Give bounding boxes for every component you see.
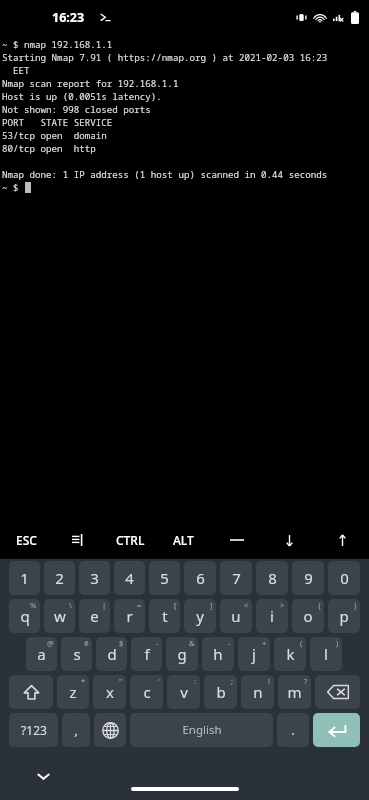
button[interactable]: 7 [220,561,252,595]
button[interactable]: 3 [79,561,110,595]
button[interactable]: o [292,599,324,633]
button[interactable]: Shift [9,675,53,709]
staticText: > [280,600,285,610]
button[interactable]: d [96,637,127,671]
staticText: EET [2,64,30,77]
staticText: 8 [268,568,277,588]
staticText: x [106,682,114,702]
button[interactable]: j [238,637,270,671]
button[interactable]: ESC [0,521,52,559]
button[interactable]: , [62,713,90,747]
button[interactable]: r [114,599,145,633]
button[interactable]: v [167,675,200,709]
button[interactable]: e [79,599,110,633]
staticText: 7 [232,568,241,588]
button[interactable]: Minus [210,521,263,559]
staticText: q [20,606,30,626]
button[interactable]: 2 [44,561,75,595]
staticText: ' [158,676,160,686]
staticText: e [90,606,99,626]
button[interactable]: n [241,675,274,709]
staticText: 4 [125,568,134,588]
staticText: ! [268,676,271,686]
staticText: \ [69,600,72,610]
staticText: CTRL [116,532,145,548]
button[interactable]: b [204,675,237,709]
button[interactable]: 0 [328,561,360,595]
button[interactable]: z [57,675,89,709]
staticText: c [143,682,151,702]
staticText: < [244,600,249,610]
staticText: [ [174,600,177,610]
button[interactable]: Enter [313,713,360,747]
staticText: # [84,638,89,648]
staticText: Nmap done: 1 IP address (1 host up) scan… [2,168,328,181]
staticText: 3 [90,568,99,588]
button[interactable]: u [220,599,252,633]
staticText: PORT STATE SERVICE [2,116,113,129]
button[interactable]: q [9,599,40,633]
button[interactable]: CTRL [104,521,157,559]
staticText: { [318,600,321,610]
button[interactable]: 4 [114,561,145,595]
button[interactable]: m [278,675,311,709]
staticText: i [270,606,274,626]
staticText: Host is up (0.0051s latency). [2,90,162,103]
staticText: * [81,676,86,686]
button[interactable]: Backspace [315,675,360,709]
staticText: - [156,638,159,648]
button[interactable]: w [44,599,75,633]
button[interactable]: Down [263,521,316,559]
staticText: ~ $ nmap 192.168.1.1 [2,38,113,51]
button[interactable]: f [131,637,162,671]
staticText: r [126,606,133,626]
staticText: b [216,682,226,702]
button[interactable]: 8 [256,561,288,595]
button[interactable]: 1 [9,561,40,595]
button[interactable]: 5 [149,561,180,595]
staticText: t [162,606,168,626]
staticText: , [74,721,78,739]
button[interactable]: h [202,637,234,671]
staticText: m [287,682,302,702]
button[interactable]: p [328,599,360,633]
staticText: Nmap scan report for 192.168.1.1 [2,77,179,90]
staticText: d [107,644,117,664]
staticText: 53/tcp open domain [2,129,107,142]
button[interactable]: g [166,637,198,671]
staticText: = [137,600,142,610]
staticText: 0 [340,568,349,588]
button[interactable]: x [93,675,126,709]
button[interactable]: 6 [184,561,216,595]
staticText: p [339,606,349,626]
staticText: + [262,638,267,648]
staticText: 6 [196,568,205,588]
staticText: - [228,638,231,648]
button[interactable]: c [130,675,163,709]
staticText: @ [47,638,54,648]
staticText: Starting Nmap 7.91 ( https://nmap.org ) … [2,51,328,64]
button[interactable]: l [310,637,342,671]
button[interactable]: Hide keyboard [28,761,58,791]
button[interactable]: s [61,637,92,671]
button[interactable]: ALT [157,521,210,559]
staticText: Not shown: 998 closed ports [2,103,151,116]
button[interactable]: Change language [94,713,126,747]
button[interactable]: Tab [52,521,104,559]
button[interactable]: Up [316,521,369,559]
button[interactable]: i [256,599,288,633]
button[interactable]: t [149,599,180,633]
staticText: h [213,644,223,664]
button[interactable]: y [184,599,216,633]
button[interactable]: k [274,637,306,671]
staticText: s [73,644,81,664]
button[interactable]: 9 [292,561,324,595]
staticText: 16:23 [52,9,85,26]
button[interactable]: a [26,637,57,671]
button[interactable]: ?123 [9,713,58,747]
button[interactable]: English [130,713,273,747]
staticText: a [37,644,46,664]
staticText: w [54,606,66,626]
button[interactable]: . [277,713,309,747]
staticText: : [194,676,197,686]
